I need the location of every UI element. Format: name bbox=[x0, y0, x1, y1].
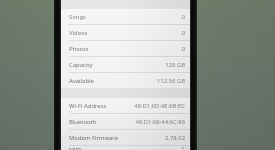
button[interactable]: Capacity bbox=[61, 57, 190, 72]
button[interactable]: Photos bbox=[61, 41, 190, 56]
staticText: 48:D1:68:44:6C:86 bbox=[135, 118, 185, 126]
button[interactable]: Available bbox=[61, 73, 190, 88]
button[interactable]: Modem Firmware bbox=[61, 130, 190, 145]
staticText: Modem Firmware bbox=[69, 134, 118, 142]
button[interactable]: SEID bbox=[61, 146, 190, 150]
staticText: 0 bbox=[181, 29, 185, 37]
staticText: Songs bbox=[69, 13, 86, 21]
staticText: 128 GB bbox=[165, 61, 185, 69]
staticText: 0 bbox=[181, 45, 185, 53]
staticText: 112.56 GB bbox=[156, 77, 185, 85]
staticText: Capacity bbox=[69, 61, 93, 69]
button[interactable]: Wi-Fi Address bbox=[61, 98, 190, 113]
staticText: 2.78.02 bbox=[164, 134, 185, 142]
staticText: Videos bbox=[69, 29, 88, 37]
other: More bbox=[181, 146, 185, 150]
staticText: Photos bbox=[69, 45, 89, 53]
button[interactable]: Songs bbox=[61, 9, 190, 24]
button[interactable]: Bluetooth bbox=[61, 114, 190, 129]
staticText: Available bbox=[69, 77, 94, 85]
staticText: Wi-Fi Address bbox=[69, 102, 107, 110]
staticText: Bluetooth bbox=[69, 118, 97, 126]
button[interactable]: Videos bbox=[61, 25, 190, 40]
staticText: 48:D1:6D:4E:6B:EC bbox=[134, 102, 185, 110]
staticText: 0 bbox=[181, 13, 185, 21]
staticText: SEID bbox=[69, 146, 82, 150]
